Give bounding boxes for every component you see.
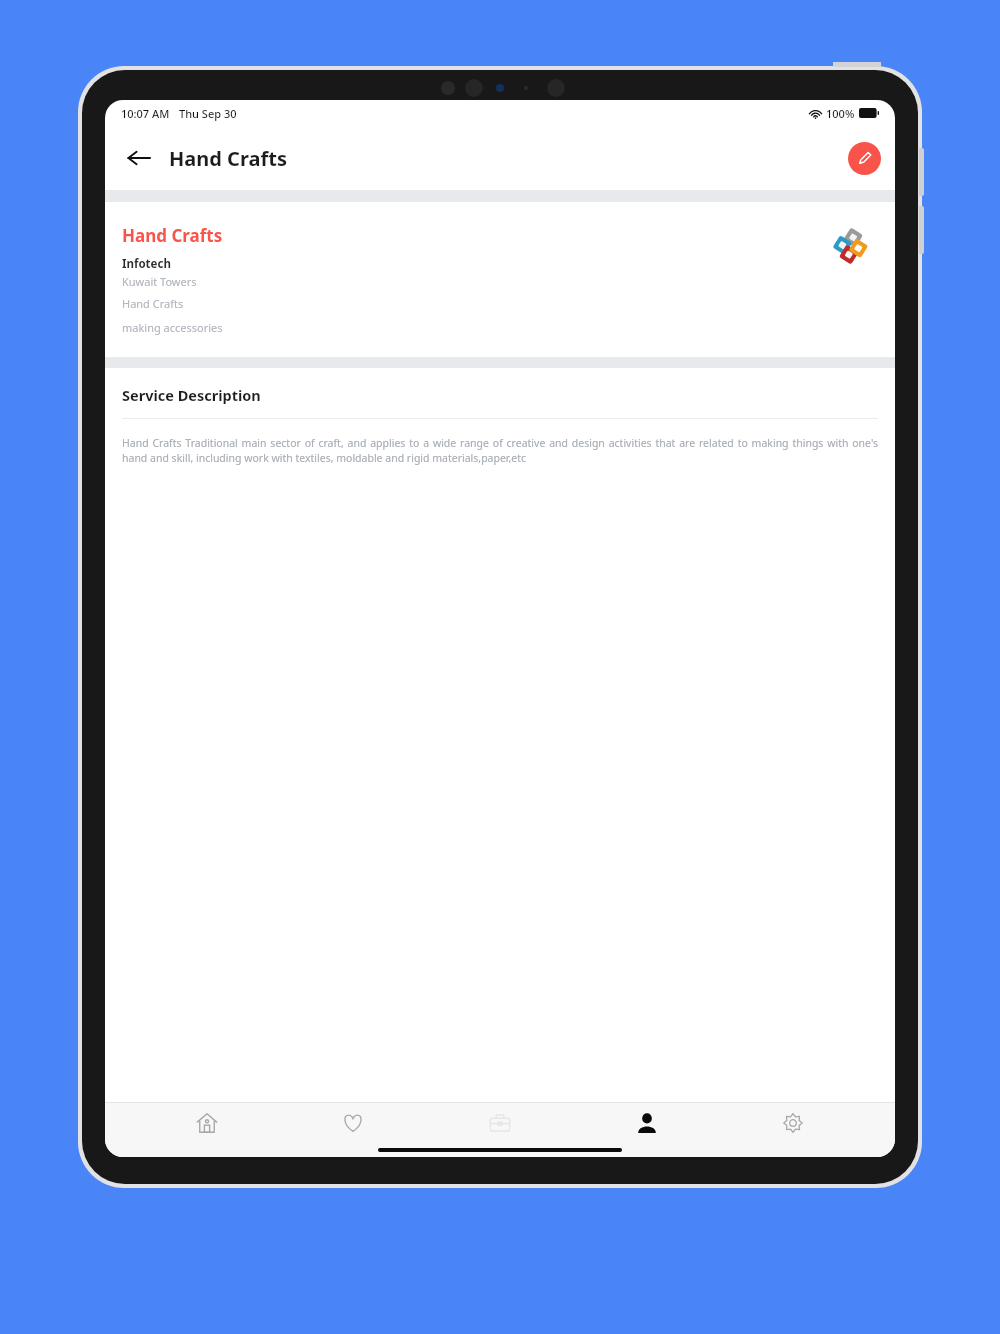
staticText: Hand Crafts [122, 296, 184, 311]
staticText: Hand Crafts [122, 224, 223, 247]
staticText: Thu Sep 30 [179, 106, 237, 121]
staticText: Service Description [122, 385, 261, 405]
button[interactable]: Favorites [308, 1102, 398, 1144]
button[interactable]: Profile [602, 1102, 692, 1144]
button[interactable]: Settings [748, 1102, 838, 1144]
button[interactable]: Jobs [455, 1102, 545, 1144]
staticText: Infotech [122, 256, 171, 272]
button[interactable]: Hand Crafts [105, 202, 895, 357]
staticText: Hand Crafts Traditional main sector of c… [122, 436, 878, 465]
button[interactable]: Edit [848, 142, 881, 175]
staticText: 100% [826, 106, 855, 121]
button[interactable]: Home [162, 1102, 252, 1144]
staticText: Kuwait Towers [122, 274, 197, 289]
button[interactable]: Back [119, 138, 159, 178]
staticText: 10:07 AM [121, 106, 170, 121]
staticText: making accessories [122, 320, 223, 335]
staticText: Hand Crafts [169, 145, 287, 172]
